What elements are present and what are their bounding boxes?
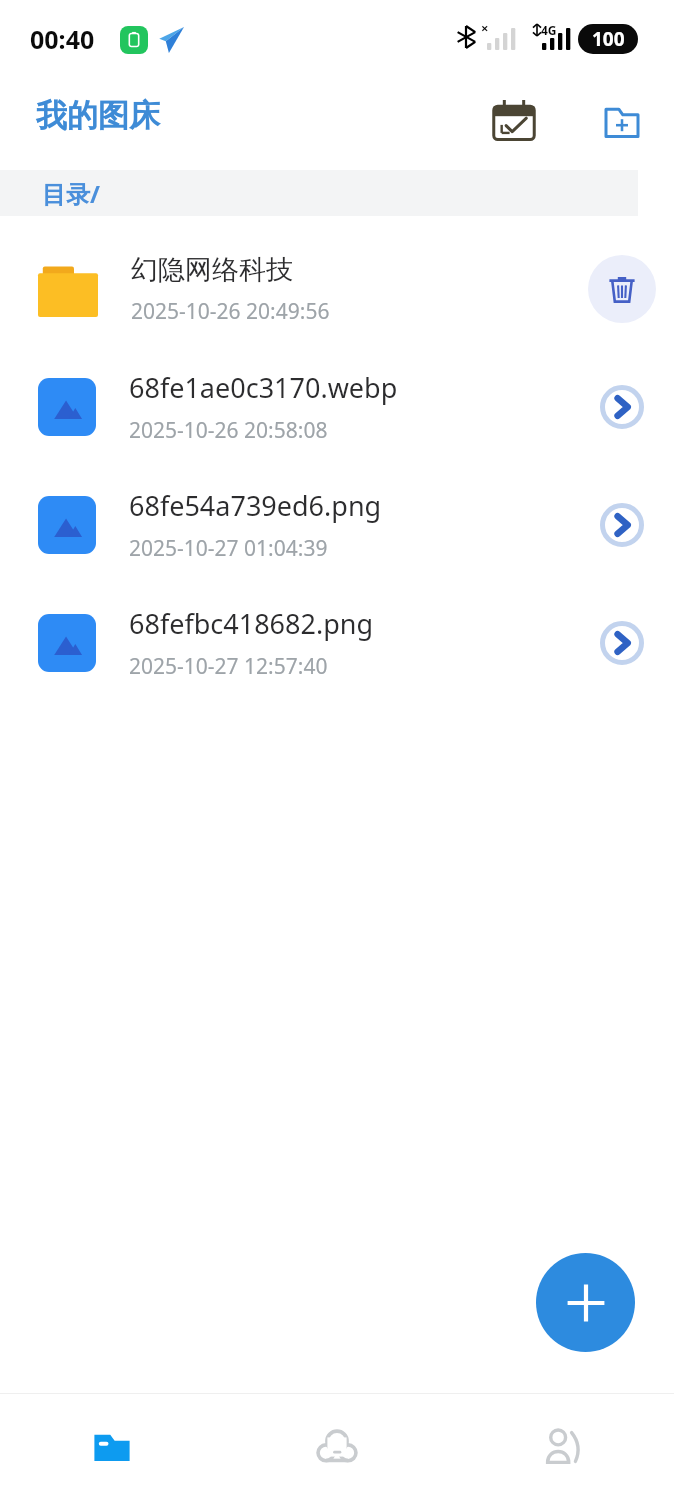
staticText: 68fefbc418682.png bbox=[129, 605, 374, 642]
button[interactable]: 幻隐网络科技 bbox=[0, 230, 674, 348]
staticText: 00:40 bbox=[30, 22, 95, 56]
button[interactable]: Delete bbox=[588, 255, 656, 323]
button[interactable]: 目录/ bbox=[0, 170, 638, 216]
button[interactable]: 68fe1ae0c3170.webp bbox=[0, 348, 674, 466]
button[interactable]: Open bbox=[588, 373, 656, 441]
button[interactable]: Contacts bbox=[449, 1394, 674, 1500]
staticText: 4G bbox=[541, 22, 557, 38]
staticText: 100 bbox=[592, 26, 625, 52]
staticText: 2025-10-26 20:49:56 bbox=[131, 297, 330, 326]
button[interactable]: New folder bbox=[586, 86, 658, 158]
button[interactable]: Add bbox=[536, 1253, 635, 1352]
button[interactable]: Open bbox=[588, 609, 656, 677]
button[interactable]: Calendar bbox=[478, 86, 550, 158]
staticText: × bbox=[481, 19, 489, 37]
staticText: 2025-10-26 20:58:08 bbox=[129, 416, 328, 445]
button[interactable]: Open bbox=[588, 491, 656, 559]
button[interactable]: Cloud bbox=[224, 1394, 449, 1500]
staticText: 2025-10-27 01:04:39 bbox=[129, 534, 328, 563]
button[interactable]: 68fe54a739ed6.png bbox=[0, 466, 674, 584]
staticText: 幻隐网络科技 bbox=[131, 253, 293, 287]
staticText: 68fe1ae0c3170.webp bbox=[129, 369, 398, 406]
button[interactable]: Files bbox=[0, 1394, 224, 1500]
staticText: 68fe54a739ed6.png bbox=[129, 487, 382, 524]
staticText: 我的图床 bbox=[36, 96, 160, 135]
button[interactable]: 68fefbc418682.png bbox=[0, 584, 674, 702]
staticText: 目录/ bbox=[42, 177, 100, 210]
staticText: 2025-10-27 12:57:40 bbox=[129, 652, 328, 681]
